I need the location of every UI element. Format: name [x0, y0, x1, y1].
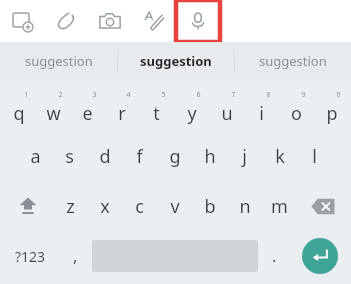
staticText: c — [135, 194, 144, 219]
staticText: suggestion — [140, 52, 212, 70]
button[interactable]: z — [53, 181, 87, 231]
button[interactable]: Add media — [0, 0, 44, 42]
staticText: . — [272, 245, 277, 267]
staticText: x — [100, 194, 110, 219]
button[interactable]: 1 — [2, 83, 36, 132]
button[interactable]: x — [87, 181, 122, 231]
staticText: l — [312, 144, 317, 169]
staticText: k — [275, 144, 285, 169]
button[interactable]: Attach file — [44, 0, 88, 42]
staticText: 4 — [126, 90, 131, 100]
button[interactable]: s — [52, 132, 87, 181]
staticText: suggestion — [259, 52, 327, 70]
button[interactable]: j — [227, 132, 262, 181]
staticText: v — [170, 194, 180, 219]
button[interactable]: 2 — [36, 83, 70, 132]
staticText: 2 — [58, 90, 63, 100]
button[interactable]: 6 — [174, 83, 209, 132]
staticText: o — [291, 101, 302, 126]
button[interactable]: 7 — [209, 83, 244, 132]
staticText: ?123 — [15, 247, 46, 266]
staticText: i — [259, 101, 264, 126]
button[interactable]: 3 — [70, 83, 104, 132]
button[interactable]: 4 — [104, 83, 139, 132]
staticText: 6 — [196, 90, 201, 100]
button[interactable]: Enter — [302, 238, 338, 274]
staticText: p — [326, 101, 338, 126]
button[interactable]: 5 — [139, 83, 174, 132]
staticText: n — [239, 194, 251, 219]
button[interactable]: , — [59, 231, 92, 281]
staticText: d — [99, 144, 111, 169]
button[interactable]: g — [157, 132, 192, 181]
staticText: h — [204, 144, 216, 169]
staticText: f — [136, 144, 143, 169]
staticText: 1 — [24, 90, 29, 100]
staticText: z — [66, 194, 75, 219]
button[interactable]: b — [192, 181, 227, 231]
button[interactable]: l — [297, 132, 332, 181]
staticText: 0 — [336, 90, 341, 100]
button[interactable]: Voice input — [176, 0, 220, 42]
staticText: 5 — [161, 90, 166, 100]
staticText: , — [73, 245, 78, 267]
button[interactable]: 8 — [244, 83, 279, 132]
staticText: t — [153, 101, 160, 126]
staticText: j — [242, 144, 247, 169]
staticText: g — [169, 144, 181, 169]
button[interactable]: Camera — [88, 0, 132, 42]
staticText: 8 — [266, 90, 271, 100]
staticText: q — [13, 101, 25, 126]
button[interactable]: f — [122, 132, 157, 181]
staticText: 7 — [231, 90, 236, 100]
button[interactable]: a — [18, 132, 52, 181]
staticText: a — [30, 144, 41, 169]
staticText: m — [271, 194, 288, 219]
button[interactable]: v — [157, 181, 192, 231]
button[interactable]: suggestion — [118, 42, 234, 80]
staticText: b — [204, 194, 216, 219]
button[interactable]: Backspace — [297, 181, 349, 231]
staticText: e — [82, 101, 93, 126]
button[interactable]: suggestion — [0, 42, 117, 80]
button[interactable]: n — [227, 181, 262, 231]
staticText: 3 — [92, 90, 97, 100]
staticText: u — [221, 101, 233, 126]
button[interactable]: . — [258, 231, 291, 281]
button[interactable]: h — [192, 132, 227, 181]
button[interactable]: suggestion — [235, 42, 351, 80]
button[interactable]: ?123 — [2, 231, 59, 281]
staticText: r — [118, 101, 126, 126]
button[interactable]: 0 — [314, 83, 349, 132]
button[interactable]: m — [262, 181, 297, 231]
staticText: suggestion — [25, 52, 93, 70]
button[interactable]: k — [262, 132, 297, 181]
staticText: s — [65, 144, 74, 169]
staticText: 9 — [301, 90, 306, 100]
button[interactable]: 9 — [279, 83, 314, 132]
button[interactable]: c — [122, 181, 157, 231]
staticText: w — [46, 101, 61, 126]
button[interactable]: Shift — [2, 181, 53, 231]
button[interactable]: d — [87, 132, 122, 181]
staticText: y — [187, 101, 197, 126]
button[interactable]: Handwriting — [132, 0, 176, 42]
